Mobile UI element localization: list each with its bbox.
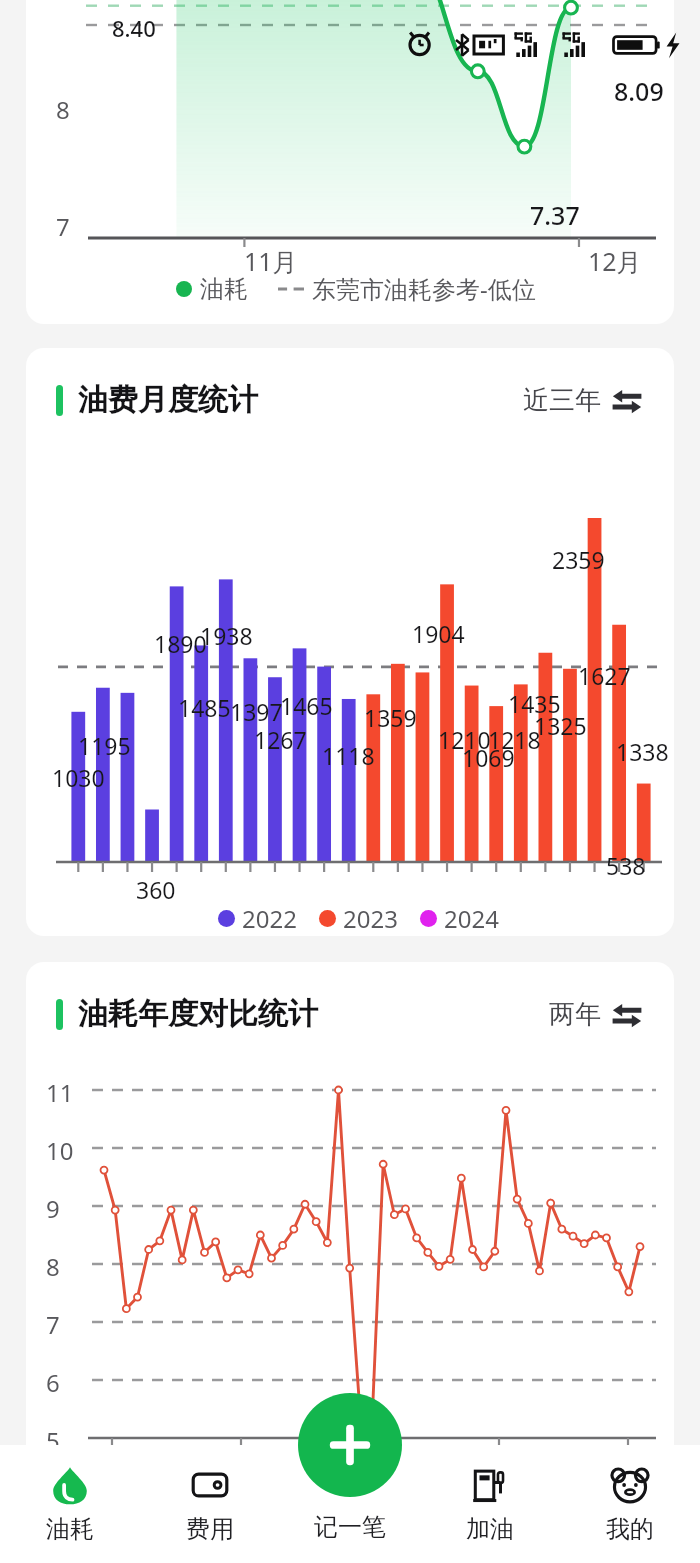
staticText: 1069 (462, 742, 515, 773)
button[interactable]: 近三年 (519, 376, 646, 425)
staticText: 1890 (154, 628, 207, 659)
staticText: 1267 (254, 724, 307, 755)
staticText: 2023 (343, 902, 398, 935)
staticText: 我的 (606, 1514, 654, 1544)
staticText: 12月 (588, 244, 642, 278)
staticText: 8.40 (112, 13, 156, 43)
button[interactable]: 8.40 (26, 0, 674, 324)
staticText: 1627 (578, 660, 631, 691)
staticText: 7.37 (530, 198, 580, 232)
staticText: 9 (46, 1192, 60, 1225)
staticText: 8 (46, 1250, 60, 1283)
staticText: 东莞市油耗参考-低位 (312, 272, 536, 305)
staticText: 5 (46, 1424, 60, 1457)
staticText: 1030 (52, 762, 105, 793)
staticText: 1465 (280, 690, 333, 721)
staticText: 油费月度统计 (78, 381, 258, 419)
staticText: 1485 (178, 692, 231, 723)
staticText: 8 (56, 93, 70, 126)
staticText: 6 (46, 1366, 60, 1399)
staticText: 1195 (78, 730, 131, 761)
staticText: 2359 (552, 544, 605, 575)
staticText: 油耗 (46, 1514, 94, 1544)
staticText: 1210 (438, 724, 491, 755)
staticText: 7 (56, 210, 70, 243)
staticText: 油耗 (200, 274, 248, 304)
button[interactable]: 1030 (26, 452, 674, 936)
staticText: 1325 (534, 710, 587, 741)
staticText: 538 (606, 850, 646, 881)
staticText: 2022 (242, 902, 297, 935)
button[interactable]: 两年 (545, 990, 646, 1039)
other: Change time range (612, 1000, 642, 1030)
staticText: 1435 (508, 688, 561, 719)
staticText: 1218 (488, 724, 541, 755)
other: Change time range (612, 386, 642, 416)
button[interactable]: 11 (26, 1066, 674, 1474)
staticText: 1359 (364, 702, 417, 733)
button[interactable]: 记一笔 (298, 1393, 402, 1497)
staticText: 1118 (322, 740, 375, 771)
staticText: 近三年 (523, 384, 601, 417)
staticText: 8.09 (614, 74, 664, 108)
button[interactable]: 费用 (140, 1445, 280, 1563)
staticText: 11月 (244, 244, 298, 278)
staticText: 记一笔 (314, 1512, 386, 1542)
button[interactable]: 油耗 (0, 1445, 140, 1563)
button[interactable]: 加油 (420, 1445, 560, 1563)
staticText: 两年 (549, 998, 601, 1031)
staticText: 360 (136, 874, 176, 905)
button[interactable]: 我的 (560, 1445, 700, 1563)
staticText: 油耗年度对比统计 (78, 995, 318, 1033)
staticText: 7 (46, 1308, 60, 1341)
staticText: 1338 (616, 736, 669, 767)
staticText: 11 (46, 1076, 74, 1109)
staticText: 1938 (200, 620, 253, 651)
staticText: 费用 (186, 1514, 234, 1544)
staticText: 1904 (412, 618, 465, 649)
staticText: 10 (46, 1134, 74, 1167)
staticText: 加油 (466, 1514, 514, 1544)
staticText: 2024 (444, 902, 499, 935)
button[interactable]: 记一笔 (280, 1445, 420, 1563)
staticText: 1397 (230, 696, 283, 727)
